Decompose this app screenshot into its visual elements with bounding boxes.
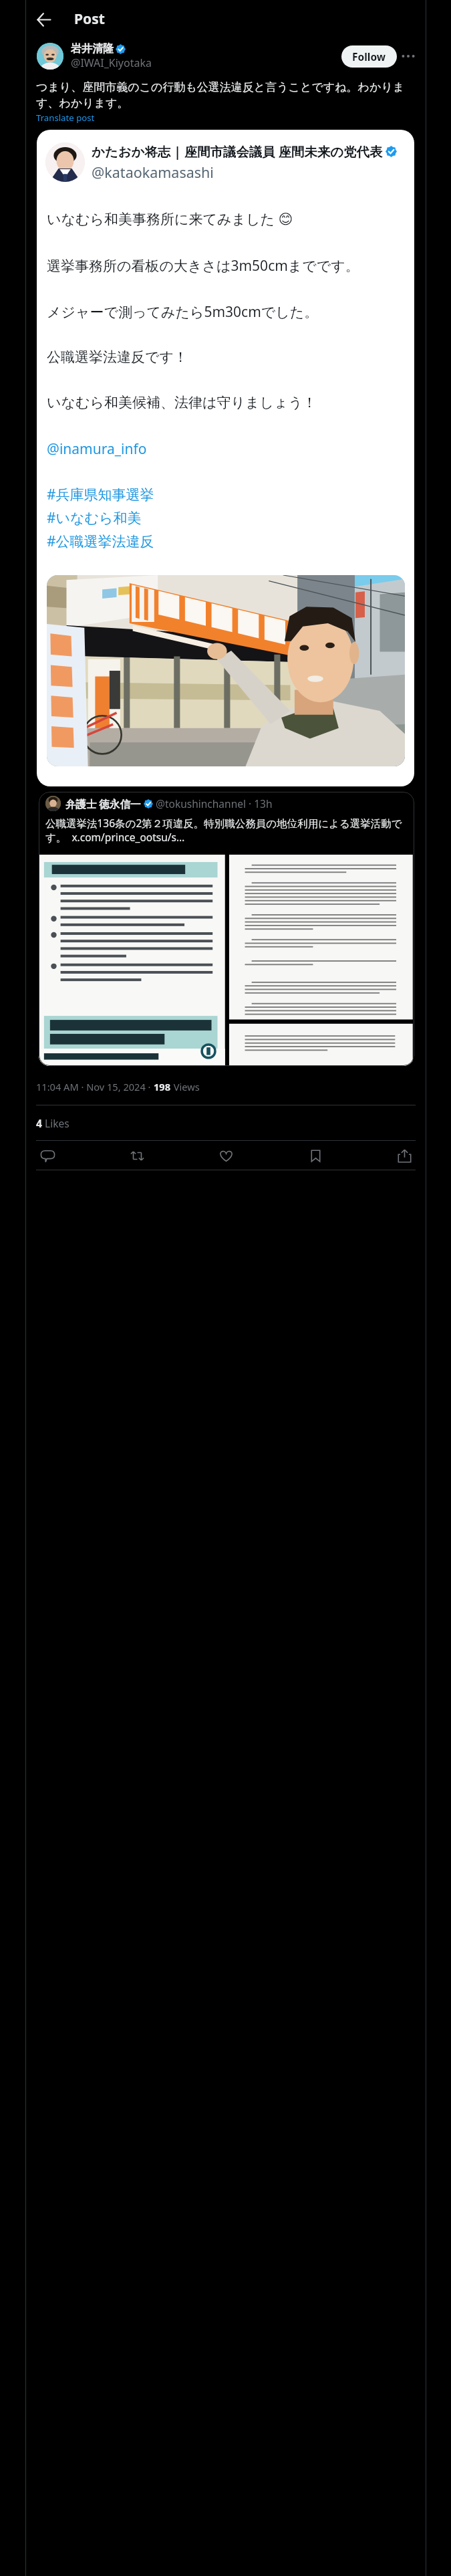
staticText: Translate post	[36, 112, 95, 124]
button[interactable]: Repost	[125, 1144, 149, 1168]
button[interactable]: More options	[397, 45, 420, 68]
staticText: かたおか将志 | 座間市議会議員 座間未来の党代表	[92, 142, 383, 160]
staticText: いなむら和美事務所に来てみました 😊 選挙事務所の看板の大きさは3m50cmまで…	[47, 209, 359, 550]
staticText: 公職選挙法136条の2第２項違反。特別職公務員の地位利用による選挙活動です。 x…	[45, 816, 408, 844]
staticText: Follow	[352, 49, 386, 64]
staticText: 198	[154, 1080, 171, 1093]
staticText: @IWAI_Kiyotaka	[71, 56, 152, 70]
button[interactable]: Like	[214, 1144, 238, 1168]
staticText: 弁護士 徳永信一	[65, 796, 141, 811]
button[interactable]: Bookmark	[303, 1144, 327, 1168]
staticText: 11:04 AM · Nov 15, 2024 ·	[36, 1080, 154, 1093]
button[interactable]: 弁護士 徳永信一	[39, 792, 414, 1066]
button[interactable]: Back	[31, 7, 56, 32]
button[interactable]: Share	[392, 1144, 416, 1168]
staticText: Views	[171, 1080, 200, 1093]
staticText: @kataokamasashi	[92, 163, 214, 182]
staticText: Likes	[42, 1116, 69, 1130]
staticText: つまり、座間市義のこの行動も公選法違反と言うことですね。わかります、わかります。	[36, 80, 416, 110]
button[interactable]: 4	[36, 1116, 69, 1130]
staticText: Post	[74, 9, 105, 29]
button[interactable]: Reply	[35, 1144, 59, 1168]
button[interactable]: Translate post	[36, 112, 95, 124]
staticText: @tokushinchannel · 13h	[156, 796, 273, 811]
button[interactable]: Follow	[341, 45, 397, 68]
staticText: 4	[36, 1116, 42, 1130]
staticText: 岩井清隆	[71, 42, 114, 56]
button[interactable]: かたおか将志 | 座間市議会議員 座間未来の党代表	[37, 130, 414, 786]
